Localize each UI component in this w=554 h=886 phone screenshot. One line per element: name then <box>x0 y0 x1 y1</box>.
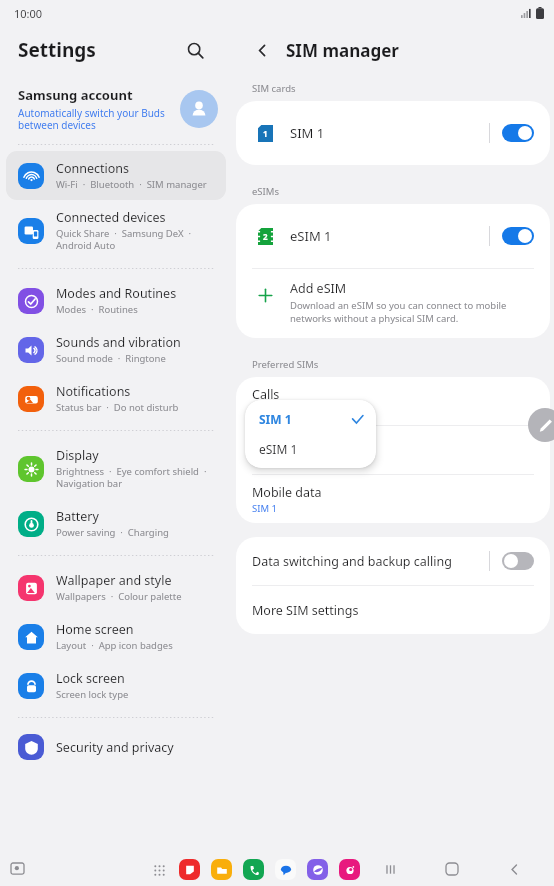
staticText: SIM 1 <box>252 502 277 515</box>
staticText: SIM 1 <box>252 404 277 417</box>
button[interactable]: More SIM settings <box>236 586 550 634</box>
button[interactable]: camera <box>339 859 360 880</box>
button[interactable]: Back <box>502 857 526 881</box>
staticText: eSIMs <box>252 185 279 198</box>
staticText: Battery <box>56 508 99 525</box>
staticText: SIM 1 <box>290 124 489 142</box>
button[interactable]: Mobile data <box>236 475 550 523</box>
staticText: Brightness · Eye comfort shield · Naviga… <box>56 465 207 490</box>
staticText: Calls <box>252 386 280 403</box>
staticText: 1 <box>263 128 268 139</box>
button[interactable]: msg <box>275 859 296 880</box>
button[interactable]: Security and privacy <box>6 725 226 769</box>
button[interactable]: Sounds and vibration <box>6 325 226 374</box>
staticText: 2 <box>263 231 268 242</box>
staticText: Status bar · Do not disturb <box>56 401 179 414</box>
button[interactable]: Wallpaper and style <box>6 563 226 612</box>
button[interactable]: Back <box>248 36 276 64</box>
button[interactable]: Notifications <box>6 374 226 423</box>
button[interactable]: Search <box>180 35 210 65</box>
button[interactable]: Connected devices <box>6 200 226 261</box>
staticText: Notifications <box>56 383 131 400</box>
staticText: Display <box>56 447 99 464</box>
staticText: Add eSIM <box>290 280 347 297</box>
button[interactable]: Apps <box>150 861 168 879</box>
staticText: Connected devices <box>56 209 166 226</box>
staticText: Mobile data <box>252 484 322 501</box>
button[interactable]: note <box>179 859 200 880</box>
staticText: Text messages <box>252 435 338 452</box>
button[interactable]: Lock screen <box>6 661 226 710</box>
staticText: Wallpaper and style <box>56 572 172 589</box>
staticText: Power saving · Charging <box>56 526 169 539</box>
button[interactable]: Recents <box>378 857 402 881</box>
button[interactable]: internet <box>307 859 328 880</box>
staticText: 10:00 <box>14 6 43 21</box>
staticText: Samsung account <box>18 86 133 104</box>
button[interactable]: Edit <box>528 408 554 442</box>
button[interactable]: Data switching and backup calling <box>236 537 550 585</box>
staticText: Wallpapers · Colour palette <box>56 590 182 603</box>
staticText: Automatically switch your Buds between d… <box>18 106 165 132</box>
staticText: eSIM 1 <box>259 441 298 457</box>
staticText: SIM 1 <box>259 411 351 427</box>
button[interactable]: Samsung account <box>0 74 232 144</box>
staticText: eSIM 1 <box>290 227 489 245</box>
staticText: Connections <box>56 160 129 177</box>
button[interactable]: Toggle <box>502 124 534 142</box>
staticText: Download an eSIM so you can connect to m… <box>290 299 507 325</box>
button[interactable]: eSIM 1 <box>245 434 376 464</box>
staticText: Preferred SIMs <box>252 358 319 371</box>
staticText: Settings <box>18 37 96 63</box>
button[interactable]: phone <box>243 859 264 880</box>
button[interactable]: Connections <box>6 151 226 200</box>
button[interactable]: Home screen <box>6 612 226 661</box>
staticText: SIM manager <box>286 39 399 62</box>
staticText: Sounds and vibration <box>56 334 181 351</box>
button[interactable]: Calls <box>236 377 550 425</box>
staticText: Quick Share · Samsung DeX · Android Auto <box>56 227 192 252</box>
button[interactable]: Add eSIM <box>236 269 550 338</box>
staticText: Modes · Routines <box>56 303 138 316</box>
staticText: Screen lock type <box>56 688 129 701</box>
button[interactable]: 1 <box>236 101 550 165</box>
button[interactable]: Modes and Routines <box>6 276 226 325</box>
staticText: Security and privacy <box>56 739 174 756</box>
staticText: Wi-Fi · Bluetooth · SIM manager <box>56 178 207 191</box>
staticText: Sound mode · Ringtone <box>56 352 166 365</box>
button[interactable]: Recent apps panel <box>6 858 28 880</box>
button[interactable]: Battery <box>6 499 226 548</box>
staticText: SIM cards <box>252 82 296 95</box>
button[interactable]: SIM 1 <box>245 404 376 434</box>
button[interactable]: 2 <box>236 204 550 268</box>
button[interactable]: Home <box>440 857 464 881</box>
staticText: Data switching and backup calling <box>252 553 489 570</box>
button[interactable]: Display <box>6 438 226 499</box>
staticText: More SIM settings <box>252 602 359 619</box>
button[interactable]: folder <box>211 859 232 880</box>
button[interactable]: Toggle <box>502 227 534 245</box>
staticText: Home screen <box>56 621 134 638</box>
staticText: Layout · App icon badges <box>56 639 173 652</box>
staticText: Lock screen <box>56 670 125 687</box>
staticText: SIM 1 <box>252 453 277 466</box>
button[interactable]: Text messages <box>236 426 550 474</box>
button[interactable]: Toggle <box>502 552 534 570</box>
staticText: Modes and Routines <box>56 285 177 302</box>
